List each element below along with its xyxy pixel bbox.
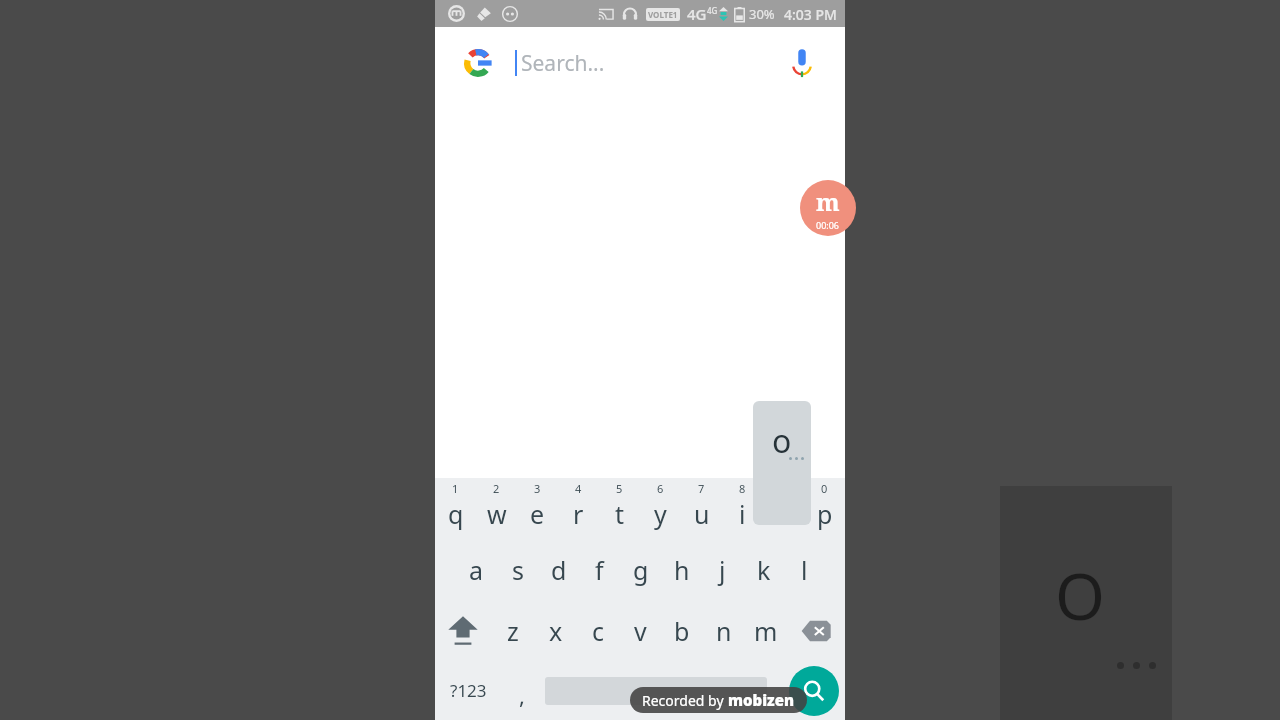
staticText: u [694, 497, 710, 531]
button[interactable]: d [538, 539, 579, 600]
button[interactable]: g [620, 539, 661, 600]
staticText: 30% [749, 5, 775, 23]
button[interactable]: Shift [435, 600, 491, 661]
button[interactable]: , [501, 661, 543, 720]
staticText: m [816, 185, 840, 218]
button[interactable]: Voice search [781, 42, 823, 84]
button[interactable]: x [534, 600, 577, 661]
staticText: Recorded by [642, 691, 728, 710]
button[interactable]: k [743, 539, 784, 600]
button[interactable]: f [579, 539, 620, 600]
staticText: b [674, 614, 690, 648]
staticText: 7 [698, 481, 705, 496]
staticText: k [757, 553, 771, 587]
staticText: 8 [739, 481, 746, 496]
button[interactable]: 3 [517, 478, 558, 539]
staticText: 3 [534, 481, 541, 496]
staticText: x [549, 614, 563, 648]
staticText: l [801, 553, 808, 587]
button[interactable]: 2 [476, 478, 517, 539]
staticText: i [739, 497, 746, 531]
staticText: o [772, 419, 792, 463]
staticText: e [530, 497, 545, 531]
button[interactable]: Backspace [787, 600, 845, 661]
button[interactable]: n [703, 600, 745, 661]
staticText: 5 [616, 481, 623, 496]
button[interactable]: j [702, 539, 743, 600]
staticText: ?123 [450, 679, 487, 702]
staticText: , [519, 680, 525, 710]
button[interactable]: b [661, 600, 703, 661]
staticText: 4:03 PM [784, 5, 837, 24]
staticText: O [1055, 552, 1105, 639]
staticText: 00:06 [816, 219, 840, 231]
staticText: o [776, 497, 792, 531]
button[interactable]: 7 [681, 478, 722, 539]
button[interactable]: Google [461, 46, 495, 80]
staticText: y [654, 497, 667, 531]
staticText: 4G [707, 5, 718, 16]
button[interactable]: 9 [763, 478, 804, 539]
button[interactable]: s [497, 539, 538, 600]
staticText: s [512, 553, 524, 587]
button[interactable]: m [745, 600, 787, 661]
staticText: p [817, 497, 833, 531]
button[interactable]: Search [789, 666, 839, 716]
staticText: 2 [493, 481, 500, 496]
button[interactable]: 4 [558, 478, 599, 539]
button[interactable]: h [661, 539, 702, 600]
staticText: d [551, 553, 567, 587]
staticText: VOLTE1 [648, 9, 678, 20]
button[interactable]: 0 [804, 478, 845, 539]
button[interactable]: c [577, 600, 619, 661]
staticText: c [592, 614, 605, 648]
button[interactable]: ?123 [435, 661, 501, 720]
button[interactable]: v [619, 600, 661, 661]
staticText: n [716, 614, 732, 648]
staticText: mobizen [728, 690, 795, 710]
button[interactable]: Space [543, 661, 769, 720]
staticText: Search... [521, 49, 605, 78]
staticText: 6 [657, 481, 664, 496]
staticText: m [754, 614, 778, 648]
staticText: 4 [575, 481, 582, 496]
staticText: q [448, 497, 464, 531]
button[interactable]: Search... [521, 41, 781, 85]
button[interactable]: l [784, 539, 825, 600]
staticText: w [487, 497, 507, 531]
staticText: z [507, 614, 519, 648]
button[interactable]: 8 [722, 478, 763, 539]
button[interactable]: a [455, 539, 497, 600]
staticText: r [573, 497, 584, 531]
staticText: 4G [687, 4, 707, 24]
button[interactable]: 6 [640, 478, 681, 539]
staticText: f [595, 553, 604, 587]
button[interactable]: 5 [599, 478, 640, 539]
staticText: 1 [452, 481, 459, 496]
button[interactable]: z [491, 600, 534, 661]
staticText: a [469, 553, 484, 587]
staticText: j [719, 553, 726, 587]
staticText: 0 [821, 481, 828, 496]
button[interactable]: Mobizen recorder [800, 180, 856, 236]
staticText: h [674, 553, 690, 587]
staticText: g [633, 553, 649, 587]
staticText: v [634, 614, 647, 648]
staticText: t [615, 497, 625, 531]
button[interactable]: 1 [435, 478, 476, 539]
